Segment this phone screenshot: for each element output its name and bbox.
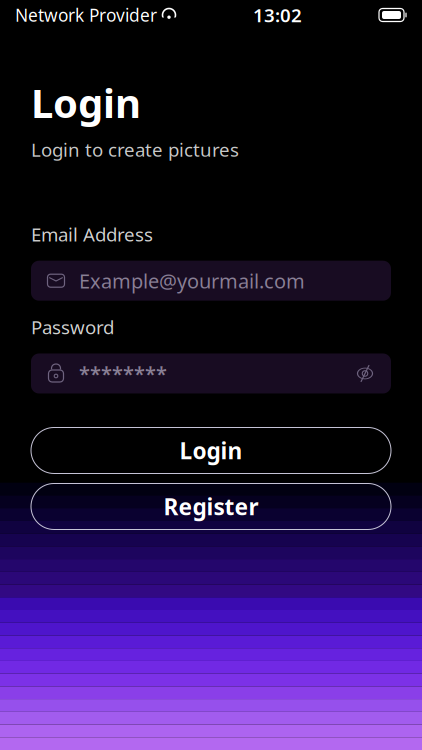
- staticText: ********: [79, 360, 167, 387]
- button[interactable]: Register: [31, 483, 391, 529]
- staticText: Email Address: [31, 222, 153, 247]
- staticText: Login to create pictures: [31, 137, 239, 162]
- button[interactable]: Login: [31, 427, 391, 473]
- staticText: Register: [163, 491, 258, 521]
- staticText: Example@yourmail.com: [79, 267, 305, 294]
- staticText: Network Provider: [15, 3, 157, 26]
- staticText: Login: [179, 435, 242, 465]
- button[interactable]: Example@yourmail.com: [31, 261, 391, 301]
- staticText: Login: [31, 76, 141, 129]
- staticText: 13:02: [253, 3, 302, 27]
- staticText: Password: [31, 315, 114, 339]
- button[interactable]: ********: [31, 353, 391, 393]
